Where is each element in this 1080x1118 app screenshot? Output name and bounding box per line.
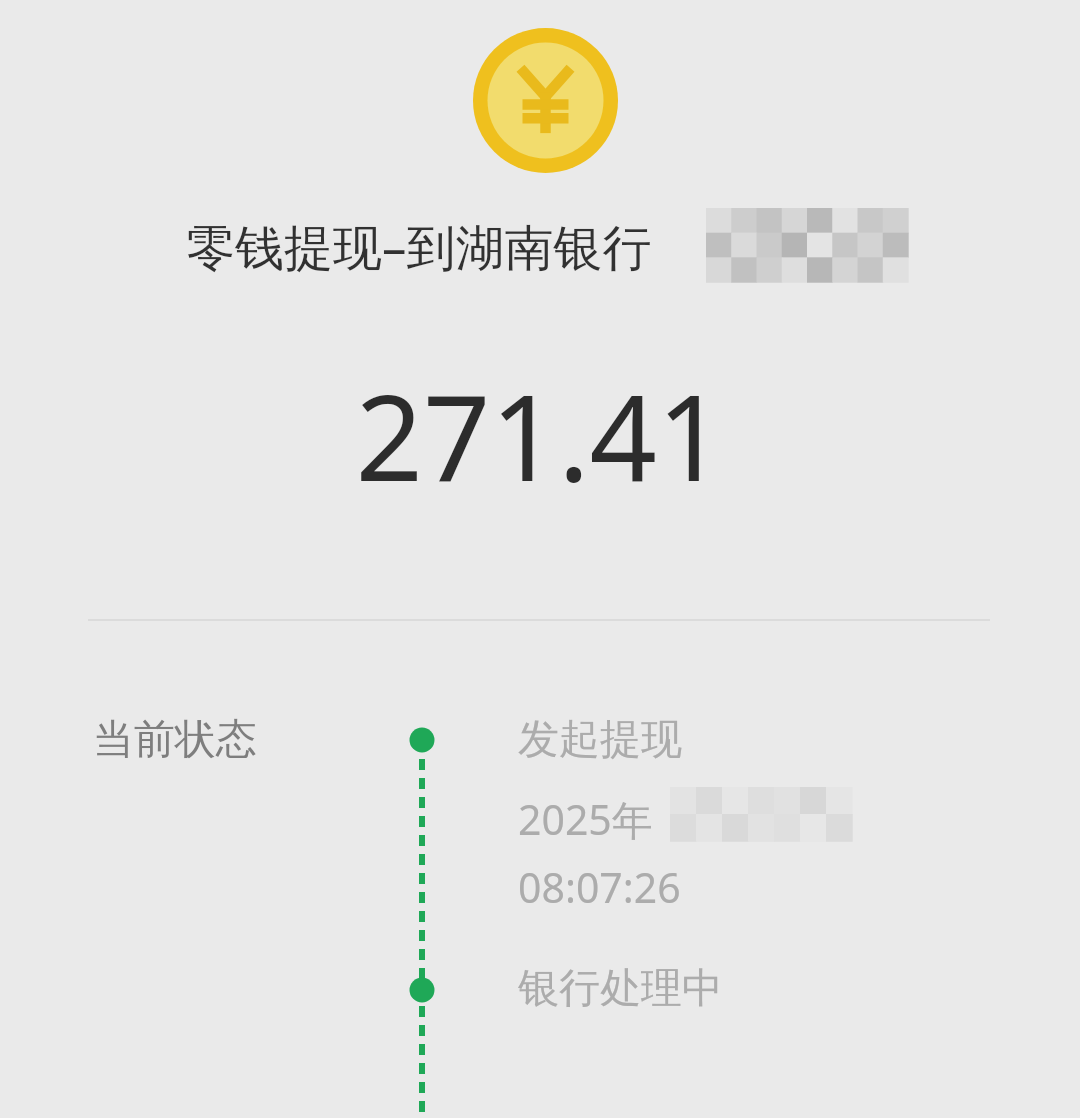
staticText: 发起提现: [518, 714, 682, 766]
staticText: 271.41: [0, 355, 1080, 485]
staticText: 银行处理中: [518, 963, 723, 1015]
staticText: 2025年: [518, 791, 653, 847]
staticText: 08:07:26: [518, 859, 681, 915]
staticText: 零钱提现–到湖南银行: [186, 213, 652, 280]
staticText: 当前状态: [93, 714, 257, 766]
button[interactable]: Withdraw coin: [473, 28, 618, 173]
